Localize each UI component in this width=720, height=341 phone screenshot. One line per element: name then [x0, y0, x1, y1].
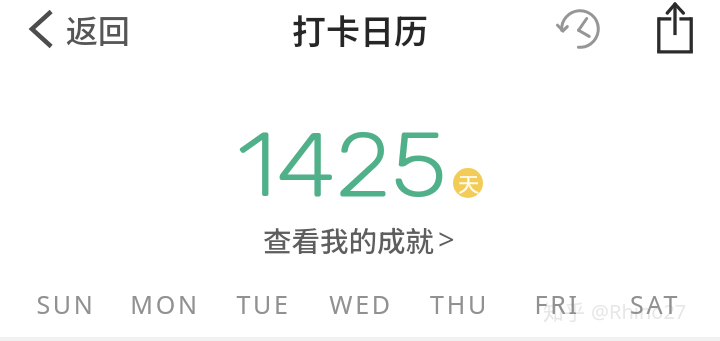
button[interactable]: SUN: [16, 287, 115, 321]
staticText: 打卡日历: [292, 5, 428, 54]
button[interactable]: Share: [647, 0, 703, 56]
button[interactable]: FRI: [508, 287, 606, 321]
staticText: SUN: [36, 287, 96, 321]
staticText: SAT: [630, 287, 680, 321]
button[interactable]: TUE: [214, 287, 312, 321]
staticText: TUE: [236, 287, 291, 321]
button[interactable]: WED: [312, 287, 410, 321]
button[interactable]: THU: [410, 287, 508, 321]
button[interactable]: History: [552, 1, 608, 57]
staticText: 知乎: [543, 296, 585, 326]
staticText: @Rhino27: [591, 298, 687, 325]
button[interactable]: 查看我的成就: [257, 216, 461, 263]
staticText: 1425: [237, 112, 448, 219]
button[interactable]: 返回: [24, 2, 141, 56]
staticText: 返回: [66, 6, 131, 52]
staticText: FRI: [534, 287, 580, 321]
staticText: MON: [130, 287, 200, 321]
staticText: 天: [458, 168, 479, 198]
staticText: 查看我的成就: [263, 219, 435, 260]
button[interactable]: SAT: [606, 287, 704, 321]
staticText: THU: [430, 287, 489, 321]
staticText: WED: [329, 287, 393, 321]
staticText: >: [438, 219, 455, 258]
button[interactable]: MON: [115, 287, 214, 321]
